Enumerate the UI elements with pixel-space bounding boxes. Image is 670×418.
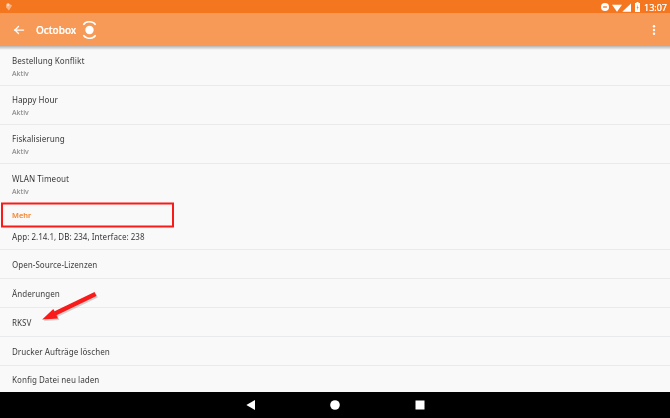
button[interactable]: WLAN Timeout: [0, 164, 670, 203]
staticText: App: 2.14.1, DB: 234, Interface: 238: [12, 231, 145, 242]
button[interactable]: Happy Hour: [0, 86, 670, 125]
staticText: Open-Source-Lizenzen: [12, 259, 98, 270]
staticText: Bestellung Konflikt: [12, 55, 85, 66]
button[interactable]: Navigate up: [0, 13, 38, 46]
button[interactable]: Konfig Datei neu laden: [0, 366, 670, 392]
button[interactable]: RKSV: [0, 308, 670, 337]
button[interactable]: Bestellung Konflikt: [0, 46, 670, 86]
button[interactable]: Back: [220, 392, 280, 418]
staticText: WLAN Timeout: [12, 173, 70, 184]
staticText: Drucker Aufträge löschen: [12, 346, 110, 357]
staticText: Octobox: [36, 23, 77, 37]
button[interactable]: Recent apps: [390, 392, 450, 418]
staticText: Aktiv: [12, 147, 29, 157]
button[interactable]: Mehr: [0, 203, 670, 224]
staticText: Fiskalisierung: [12, 133, 65, 144]
button[interactable]: Open-Source-Lizenzen: [0, 250, 670, 279]
staticText: Mehr: [12, 210, 32, 220]
button[interactable]: More options: [638, 13, 670, 46]
staticText: Happy Hour: [12, 94, 58, 105]
staticText: RKSV: [12, 317, 32, 328]
staticText: Änderungen: [12, 288, 60, 299]
button[interactable]: Änderungen: [0, 279, 670, 308]
staticText: Aktiv: [12, 108, 29, 118]
button[interactable]: Drucker Aufträge löschen: [0, 337, 670, 366]
staticText: Aktiv: [12, 187, 29, 197]
staticText: Konfig Datei neu laden: [12, 374, 100, 385]
staticText: Aktiv: [12, 69, 29, 79]
staticText: 13:07: [644, 1, 668, 13]
button[interactable]: App: 2.14.1, DB: 234, Interface: 238: [0, 224, 670, 250]
button[interactable]: Fiskalisierung: [0, 125, 670, 164]
button[interactable]: Home: [305, 392, 365, 418]
